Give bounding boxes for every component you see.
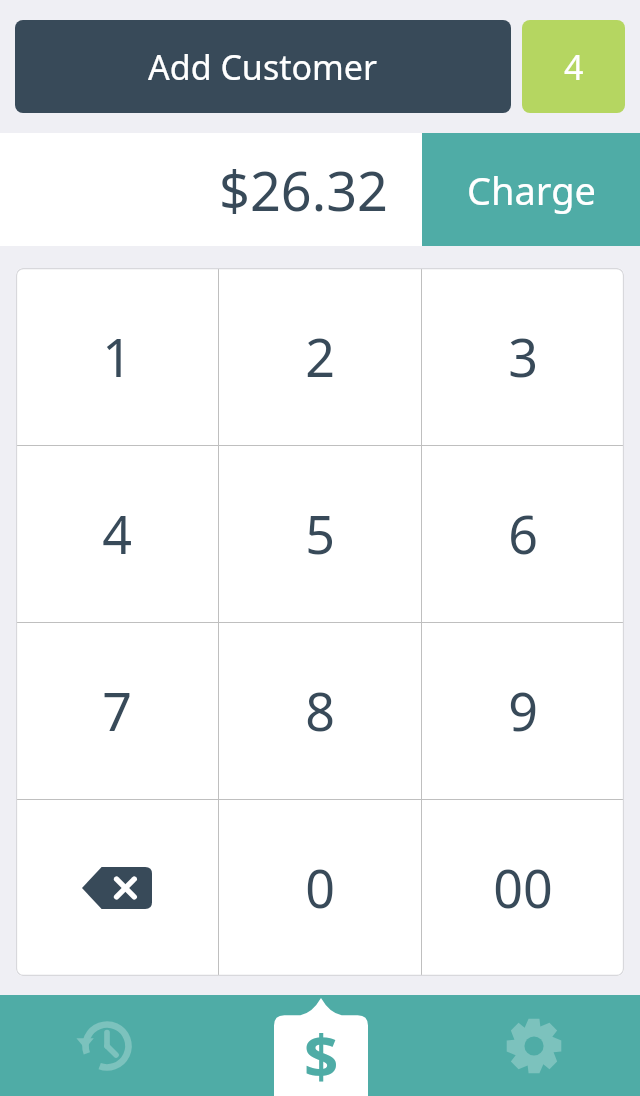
button[interactable]: Add Customer [15, 20, 511, 113]
button[interactable]: 4 [522, 20, 625, 113]
staticText: 9 [508, 675, 538, 746]
button[interactable]: 9 [422, 622, 624, 799]
button[interactable]: History [0, 995, 214, 1096]
button[interactable]: 8 [219, 622, 421, 799]
button[interactable]: 00 [422, 799, 624, 976]
staticText: 8 [305, 675, 335, 746]
staticText: $ [304, 1014, 339, 1096]
button[interactable]: 5 [219, 445, 421, 622]
button[interactable]: 6 [422, 445, 624, 622]
staticText: 5 [305, 498, 335, 569]
button[interactable]: 7 [16, 622, 218, 799]
staticText: 4 [102, 498, 132, 569]
button[interactable]: Settings [427, 995, 640, 1096]
staticText: 0 [305, 852, 335, 923]
button[interactable]: 2 [219, 268, 421, 445]
staticText: Charge [467, 164, 596, 216]
button[interactable]: Charge [214, 995, 427, 1096]
button[interactable]: 4 [16, 445, 218, 622]
staticText: Add Customer [148, 44, 378, 90]
staticText: 00 [493, 852, 553, 923]
staticText: 2 [305, 321, 335, 392]
staticText: 4 [564, 44, 584, 90]
button[interactable]: Charge [422, 133, 640, 246]
button[interactable]: $26.32 [0, 133, 422, 246]
staticText: 1 [102, 321, 132, 392]
button[interactable]: 3 [422, 268, 624, 445]
staticText: 3 [508, 321, 538, 392]
button[interactable]: 1 [16, 268, 218, 445]
staticText: 6 [508, 498, 538, 569]
staticText: 7 [102, 675, 132, 746]
button[interactable]: 0 [219, 799, 421, 976]
staticText: $26.32 [219, 153, 388, 227]
button[interactable]: Backspace [16, 799, 218, 976]
